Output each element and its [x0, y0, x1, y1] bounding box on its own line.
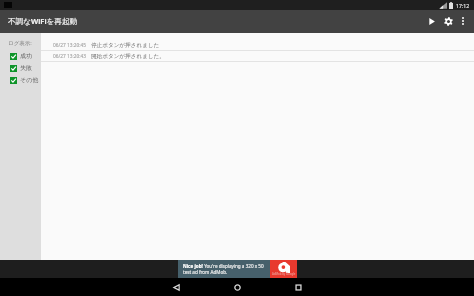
button[interactable]: Recents	[283, 278, 313, 296]
staticText: 06/27 13:20:43	[53, 53, 87, 60]
button[interactable]: Start	[424, 13, 440, 29]
button[interactable]: More options	[456, 14, 470, 28]
button[interactable]: Settings	[440, 13, 456, 29]
staticText: Nice job!	[183, 263, 203, 269]
staticText: You're displaying a 320 x 50	[203, 263, 264, 269]
button[interactable]: 失敗	[0, 62, 41, 74]
staticText: 停止ボタンが押されました	[91, 42, 160, 49]
button[interactable]: Back	[161, 278, 191, 296]
staticText: その他	[20, 76, 39, 84]
button[interactable]: その他	[0, 74, 41, 86]
button[interactable]: 06/27 13:20:43	[41, 51, 474, 62]
staticText: test ad from AdMob.	[183, 269, 228, 275]
button[interactable]: 06/27 13:20:45	[41, 40, 474, 51]
staticText: 失敗	[20, 64, 32, 72]
button[interactable]: Nice job!	[178, 260, 297, 278]
staticText: 不調なWiFiを再起動	[8, 16, 78, 26]
staticText: 成功	[20, 52, 32, 60]
button[interactable]: Home	[222, 278, 252, 296]
staticText: 06/27 13:20:45	[53, 42, 87, 49]
staticText: 開始ボタンが押されました。	[91, 53, 165, 60]
staticText: ログ表示:	[8, 39, 32, 47]
staticText: 17:12	[456, 2, 470, 9]
staticText: AdMob by Google	[272, 272, 296, 276]
button[interactable]: 成功	[0, 50, 41, 62]
